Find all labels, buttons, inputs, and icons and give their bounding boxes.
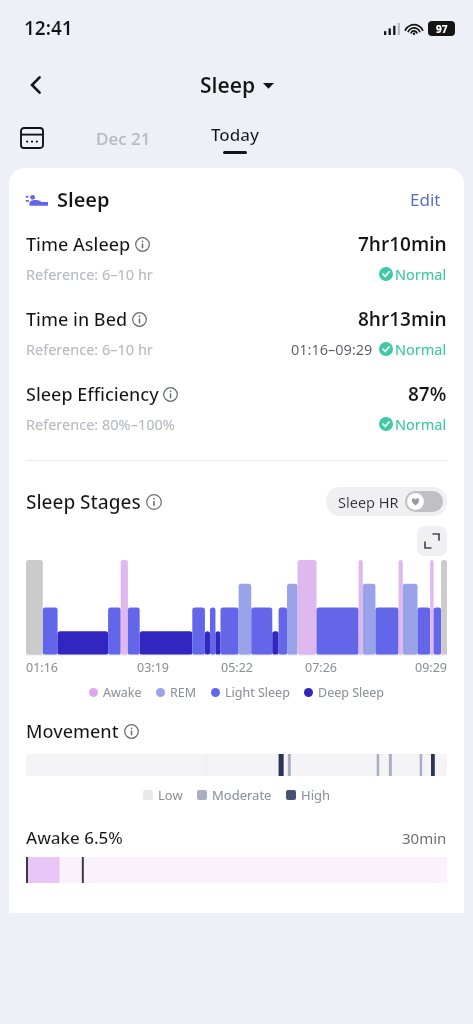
staticText: Sleep — [57, 186, 110, 213]
staticText: 8hr13min — [358, 306, 447, 332]
staticText: 05:22 — [195, 659, 279, 676]
button[interactable]: Today — [203, 121, 267, 156]
button[interactable]: Back — [14, 63, 58, 107]
staticText: 7hr10min — [358, 231, 447, 257]
staticText: Deep Sleep — [318, 684, 385, 701]
staticText: Low — [158, 786, 183, 804]
staticText: Awake — [103, 684, 142, 701]
button[interactable]: Dec 21 — [86, 121, 161, 156]
button[interactable]: Sleep Efficiency — [9, 381, 464, 434]
staticText: Sleep Stages — [26, 489, 141, 515]
button[interactable]: Expand chart — [417, 526, 447, 556]
staticText: Edit — [410, 188, 441, 211]
staticText: Moderate — [212, 786, 272, 804]
button[interactable]: Time in Bed — [9, 306, 464, 359]
staticText: 09:29 — [363, 659, 447, 676]
staticText: Time in Bed — [26, 307, 128, 332]
staticText: 97 — [436, 22, 448, 36]
staticText: Reference: 80%–100% — [26, 414, 175, 434]
staticText: Time Asleep — [26, 232, 131, 257]
staticText: 30min — [402, 828, 447, 848]
staticText: Dec 21 — [96, 127, 151, 150]
button[interactable]: Sleep — [200, 71, 274, 100]
staticText: 12:41 — [24, 15, 73, 41]
button[interactable]: Sleep HR — [326, 487, 447, 516]
button[interactable]: Edit — [404, 182, 447, 217]
staticText: 03:19 — [111, 659, 195, 676]
button[interactable]: Time Asleep — [9, 231, 464, 284]
staticText: Normal — [395, 414, 447, 434]
staticText: High — [301, 786, 331, 804]
staticText: Sleep HR — [338, 492, 399, 512]
staticText: 01:16–09:29 — [291, 339, 373, 359]
staticText: Normal — [395, 264, 447, 284]
staticText: Today — [211, 123, 259, 146]
button[interactable]: Calendar — [12, 118, 52, 158]
staticText: Light Sleep — [225, 684, 290, 701]
staticText: Normal — [395, 339, 447, 359]
staticText: Sleep — [200, 71, 256, 100]
staticText: Movement — [26, 719, 119, 744]
staticText: REM — [170, 684, 197, 701]
staticText: Reference: 6–10 hr — [26, 264, 153, 284]
staticText: 07:26 — [279, 659, 363, 676]
staticText: Sleep Efficiency — [26, 382, 159, 407]
staticText: 87% — [408, 381, 447, 407]
staticText: 01:16 — [26, 659, 111, 676]
staticText: Reference: 6–10 hr — [26, 339, 153, 359]
staticText: Awake 6.5% — [26, 826, 123, 849]
